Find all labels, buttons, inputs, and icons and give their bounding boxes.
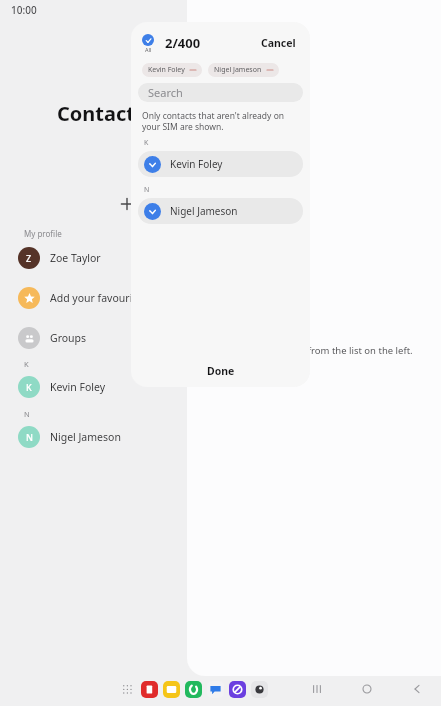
button[interactable]: Apps xyxy=(120,682,134,696)
staticText: Nigel Jameson xyxy=(170,204,238,218)
button[interactable]: Home xyxy=(357,679,377,699)
staticText: Nigel Jameson xyxy=(50,430,121,444)
staticText: Add your favourite c xyxy=(50,291,150,305)
staticText: Contacts xyxy=(57,100,146,127)
staticText: K xyxy=(24,359,29,369)
button[interactable]: Add contact xyxy=(120,197,134,211)
staticText: K xyxy=(26,381,32,393)
button[interactable]: N xyxy=(18,424,183,450)
button[interactable]: App xyxy=(163,681,180,698)
staticText: Zoe Taylor xyxy=(50,251,101,265)
staticText: Done xyxy=(207,364,235,378)
staticText: Kevin Foley xyxy=(50,380,106,394)
staticText: My profile xyxy=(24,228,62,239)
button[interactable]: Kevin Foley xyxy=(142,63,202,77)
staticText: Only contacts that aren't already on you… xyxy=(142,110,285,132)
button[interactable]: Select all xyxy=(142,34,154,53)
button[interactable]: App xyxy=(185,681,202,698)
staticText: 2/400 xyxy=(165,34,201,52)
button[interactable]: App xyxy=(207,681,224,698)
staticText: Cancel xyxy=(261,36,296,50)
staticText: N xyxy=(144,185,150,195)
staticText: Groups xyxy=(50,331,87,345)
button[interactable]: Search xyxy=(138,83,303,102)
staticText: Search xyxy=(148,85,183,100)
button[interactable]: App xyxy=(141,681,158,698)
staticText: 10:00 xyxy=(11,3,37,17)
button[interactable]: Z xyxy=(18,245,183,271)
staticText: Select contacts from the list on the lef… xyxy=(239,344,413,357)
button[interactable]: App xyxy=(229,681,246,698)
button[interactable]: Cancel xyxy=(258,33,299,53)
button[interactable]: Add your favourite c xyxy=(18,285,183,311)
staticText: N xyxy=(24,409,30,419)
button[interactable]: K xyxy=(18,374,183,400)
staticText: All xyxy=(145,46,152,53)
staticText: Kevin Foley xyxy=(148,65,185,75)
button[interactable]: App xyxy=(251,681,268,698)
staticText: Kevin Foley xyxy=(170,157,223,171)
button[interactable]: Nigel Jameson xyxy=(208,63,279,77)
staticText: Z xyxy=(26,252,32,264)
button[interactable]: Done xyxy=(131,355,310,387)
button[interactable]: Recents xyxy=(307,679,327,699)
button[interactable]: Nigel Jameson xyxy=(138,198,303,224)
staticText: Nigel Jameson xyxy=(214,65,262,75)
button[interactable]: Groups xyxy=(18,325,183,351)
button[interactable]: Back xyxy=(407,679,427,699)
staticText: N xyxy=(26,431,33,443)
staticText: K xyxy=(144,138,149,148)
button[interactable]: Kevin Foley xyxy=(138,151,303,177)
